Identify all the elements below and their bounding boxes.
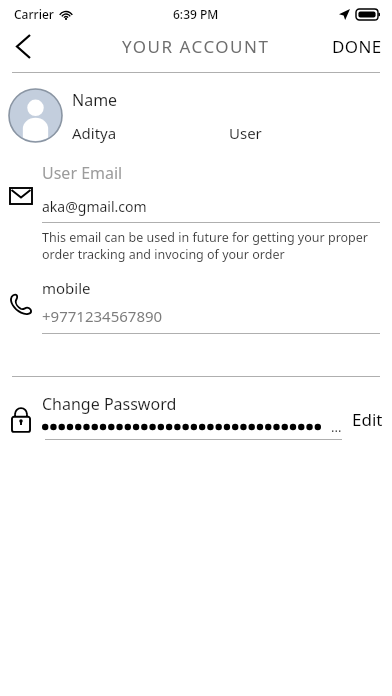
staticText: Carrier <box>14 6 54 22</box>
staticText: +9771234567890 <box>42 306 163 326</box>
staticText: User Email <box>42 162 123 184</box>
staticText: Edit <box>352 408 383 431</box>
staticText: User <box>229 123 262 143</box>
staticText: 6:39 PM <box>173 6 219 22</box>
staticText: DONE <box>332 35 382 58</box>
staticText: ... <box>331 418 342 436</box>
staticText: YOUR ACCOUNT <box>122 35 270 58</box>
button[interactable]: Back <box>0 28 46 64</box>
button[interactable]: DONE <box>332 35 382 58</box>
staticText: Change Password <box>42 393 177 415</box>
staticText: Name <box>72 89 118 111</box>
button[interactable]: Edit <box>342 393 392 445</box>
staticText: This email can be used in future for get… <box>42 229 380 262</box>
staticText: Aditya <box>72 123 117 143</box>
staticText: mobile <box>42 278 91 298</box>
staticText: aka@gmail.com <box>42 197 147 216</box>
